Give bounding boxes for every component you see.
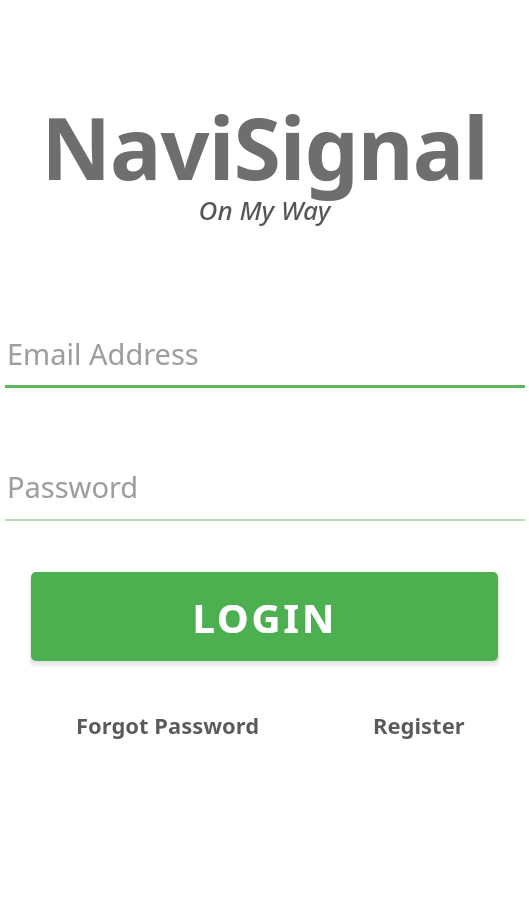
button[interactable]: Password (5, 463, 525, 521)
staticText: NaviSignal (0, 88, 529, 205)
staticText: LOGIN (192, 590, 338, 644)
staticText: Register (373, 710, 465, 740)
staticText: On My Way (0, 192, 529, 227)
staticText: Email Address (7, 334, 199, 373)
staticText: Password (7, 467, 139, 506)
button[interactable]: LOGIN (31, 572, 498, 661)
button[interactable]: Register (373, 706, 465, 744)
button[interactable]: Forgot Password (76, 706, 260, 744)
button[interactable]: Email Address (5, 330, 525, 388)
staticText: Forgot Password (76, 710, 260, 740)
